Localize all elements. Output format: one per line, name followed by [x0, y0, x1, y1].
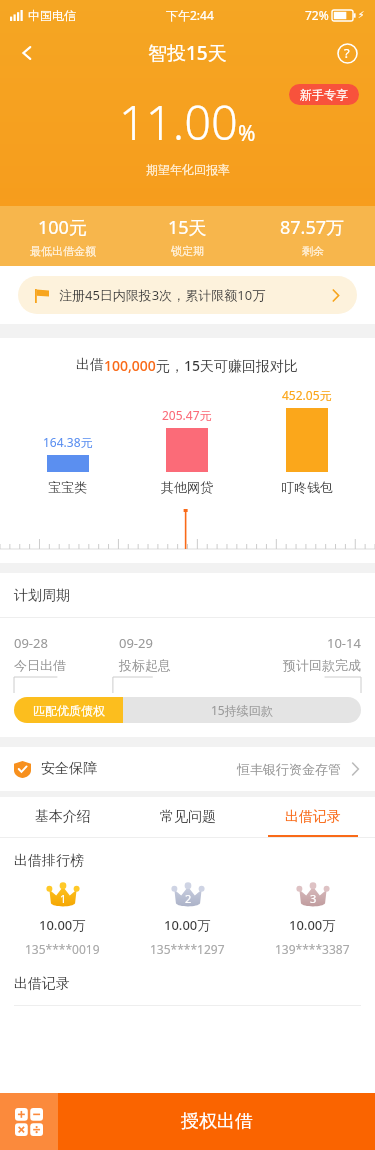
- button[interactable]: 基本介绍: [0, 797, 125, 837]
- staticText: 09-28: [14, 634, 48, 652]
- staticText: 授权出借: [181, 1110, 253, 1133]
- staticText: 139****3387: [275, 941, 350, 957]
- staticText: 10-14: [327, 634, 361, 652]
- staticText: 智投15天: [148, 40, 227, 66]
- staticText: 3: [310, 891, 317, 906]
- staticText: 新手专享: [300, 87, 348, 102]
- staticText: 135****1297: [150, 941, 225, 957]
- staticText: 锁定期: [171, 244, 204, 258]
- staticText: 恒丰银行资金存管: [237, 761, 341, 777]
- staticText: 100,000: [104, 356, 156, 375]
- staticText: ?: [344, 44, 350, 62]
- staticText: 出借排行榜: [14, 852, 84, 870]
- staticText: 剩余: [302, 244, 324, 258]
- button[interactable]: 安全保障: [0, 747, 375, 791]
- staticText: 计划周期: [14, 587, 70, 605]
- staticText: 最低出借金额: [30, 244, 96, 258]
- staticText: 72%: [305, 7, 329, 23]
- staticText: 其他网贷: [161, 479, 213, 495]
- button[interactable]: Help: [327, 33, 367, 73]
- button[interactable]: Back: [6, 32, 48, 74]
- staticText: 出借记录: [14, 975, 70, 993]
- staticText: 常见问题: [160, 808, 216, 826]
- button[interactable]: 新手专享: [289, 84, 359, 105]
- staticText: 15天: [168, 215, 207, 240]
- staticText: 135****0019: [25, 941, 100, 957]
- staticText: 164.38元: [43, 434, 93, 450]
- staticText: 10.00万: [164, 916, 211, 934]
- staticText: 预计回款完成: [283, 657, 361, 673]
- staticText: 11.00: [119, 90, 238, 154]
- staticText: 100元: [38, 215, 87, 240]
- staticText: 09-29: [119, 634, 153, 652]
- staticText: 10.00万: [39, 916, 86, 934]
- staticText: 中国电信: [28, 8, 76, 23]
- staticText: 宝宝类: [48, 479, 87, 495]
- button[interactable]: 注册45日内限投3次，累计限额10万: [18, 276, 357, 314]
- button[interactable]: 出借记录: [250, 797, 375, 837]
- staticText: 今日出借: [14, 657, 66, 673]
- button[interactable]: Calculator: [0, 1093, 58, 1150]
- staticText: 1: [60, 891, 67, 906]
- staticText: 2: [185, 891, 192, 906]
- staticText: 10.00万: [289, 916, 336, 934]
- staticText: 205.47元: [162, 407, 212, 423]
- staticText: 注册45日内限投3次，累计限额10万: [59, 286, 266, 304]
- staticText: 期望年化回报率: [146, 162, 230, 177]
- staticText: 452.05元: [282, 387, 332, 403]
- staticText: 投标起息: [119, 657, 171, 673]
- staticText: 15持续回款: [211, 702, 273, 718]
- button[interactable]: 常见问题: [125, 797, 250, 837]
- staticText: 叮咚钱包: [281, 479, 333, 495]
- staticText: 基本介绍: [35, 808, 91, 826]
- staticText: 下午2:44: [166, 7, 214, 23]
- staticText: 出借: [76, 356, 104, 374]
- staticText: 元，15天可赚回报对比: [156, 356, 299, 375]
- staticText: 87.57万: [280, 215, 345, 240]
- staticText: ⚡: [358, 10, 365, 20]
- staticText: 出借记录: [285, 808, 341, 826]
- staticText: 匹配优质债权: [33, 703, 105, 718]
- staticText: 安全保障: [41, 760, 97, 778]
- button[interactable]: 授权出借: [58, 1093, 375, 1150]
- staticText: %: [238, 119, 256, 148]
